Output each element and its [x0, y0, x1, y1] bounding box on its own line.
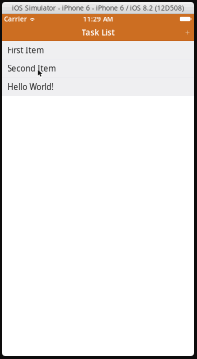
button[interactable]: Second Item	[2, 59, 194, 78]
staticText: Second Item	[7, 63, 55, 74]
button[interactable]: Hello World!	[2, 78, 194, 96]
staticText: Carrier	[4, 15, 27, 23]
staticText: Hello World!	[7, 82, 53, 92]
staticText: First Item	[7, 45, 43, 55]
staticText: Task List	[81, 27, 114, 38]
staticText: iOS Simulator - iPhone 6 - iPhone 6 / iO…	[12, 4, 184, 12]
button[interactable]: Add	[181, 24, 194, 41]
button[interactable]: First Item	[2, 41, 194, 59]
staticText: 11:29 AM	[83, 15, 113, 23]
